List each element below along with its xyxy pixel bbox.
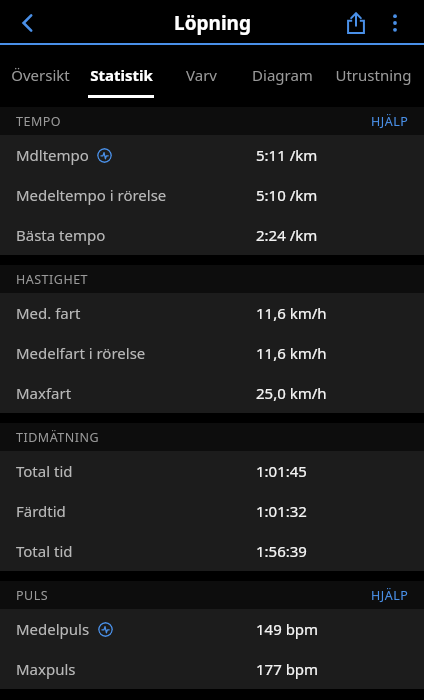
staticText: 177 bpm bbox=[256, 659, 319, 679]
button[interactable]: HJÄLP bbox=[371, 587, 409, 604]
button[interactable]: Total tid bbox=[0, 451, 424, 491]
button[interactable]: Mdltempo bbox=[0, 135, 424, 175]
staticText: Medelfart i rörelse bbox=[16, 343, 146, 363]
staticText: HJÄLP bbox=[371, 113, 409, 130]
button[interactable]: Total tid bbox=[0, 531, 424, 571]
button[interactable]: Maxfart bbox=[0, 373, 424, 413]
staticText: Statistik bbox=[90, 65, 153, 85]
staticText: 2:24 /km bbox=[256, 225, 318, 245]
staticText: Total tid bbox=[16, 541, 73, 561]
staticText: Medeltempo i rörelse bbox=[16, 185, 167, 205]
staticText: Maxpuls bbox=[16, 659, 76, 679]
staticText: 1:01:32 bbox=[256, 501, 307, 521]
staticText: 1:56:39 bbox=[256, 541, 307, 561]
button[interactable]: Medeltempo i rörelse bbox=[0, 175, 424, 215]
staticText: Bästa tempo bbox=[16, 225, 106, 245]
button[interactable]: More options bbox=[378, 6, 412, 40]
staticText: Total tid bbox=[16, 461, 73, 481]
staticText: 11,6 km/h bbox=[256, 303, 327, 323]
staticText: Diagram bbox=[252, 65, 313, 85]
staticText: Medelpuls bbox=[16, 619, 90, 639]
button[interactable]: Översikt bbox=[0, 45, 80, 107]
staticText: TIDMÄTNING bbox=[16, 429, 100, 446]
button[interactable]: Maxpuls bbox=[0, 649, 424, 689]
staticText: 1:01:45 bbox=[256, 461, 307, 481]
staticText: HJÄLP bbox=[371, 587, 409, 604]
staticText: Mdltempo bbox=[16, 145, 89, 165]
button[interactable]: HJÄLP bbox=[371, 113, 409, 130]
button[interactable]: Medelpuls bbox=[0, 609, 424, 649]
staticText: 5:11 /km bbox=[256, 145, 318, 165]
button[interactable]: Varv bbox=[161, 45, 242, 107]
staticText: 5:10 /km bbox=[256, 185, 318, 205]
button[interactable]: Med. fart bbox=[0, 293, 424, 333]
staticText: HASTIGHET bbox=[16, 271, 89, 288]
staticText: Med. fart bbox=[16, 303, 81, 323]
button[interactable]: Back bbox=[6, 1, 50, 45]
staticText: Maxfart bbox=[16, 383, 72, 403]
staticText: Varv bbox=[186, 65, 217, 85]
staticText: Utrustning bbox=[335, 65, 412, 85]
button[interactable]: Utrustning bbox=[323, 45, 424, 107]
staticText: 25,0 km/h bbox=[256, 383, 327, 403]
button[interactable]: Bästa tempo bbox=[0, 215, 424, 255]
staticText: PULS bbox=[16, 587, 49, 604]
button[interactable]: Medelfart i rörelse bbox=[0, 333, 424, 373]
button[interactable]: Statistik bbox=[80, 45, 161, 107]
button[interactable]: Share bbox=[334, 1, 378, 45]
button[interactable]: Diagram bbox=[242, 45, 323, 107]
staticText: 149 bpm bbox=[256, 619, 319, 639]
staticText: TEMPO bbox=[16, 113, 62, 130]
staticText: Färdtid bbox=[16, 501, 66, 521]
staticText: Översikt bbox=[11, 65, 70, 85]
staticText: 11,6 km/h bbox=[256, 343, 327, 363]
button[interactable]: Färdtid bbox=[0, 491, 424, 531]
staticText: Löpning bbox=[174, 10, 251, 36]
